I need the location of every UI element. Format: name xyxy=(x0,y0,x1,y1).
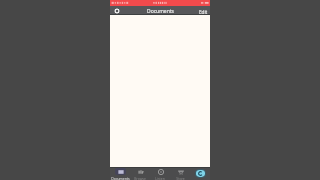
button[interactable]: Listen xyxy=(150,167,170,180)
button[interactable]: Browse xyxy=(130,167,150,180)
button[interactable]: Edit xyxy=(197,7,210,15)
staticText: Store xyxy=(176,176,185,180)
staticText: Documents xyxy=(147,8,174,15)
button[interactable]: Assistant xyxy=(190,167,210,180)
button[interactable]: Store xyxy=(170,167,190,180)
staticText: Listen xyxy=(155,176,165,180)
button[interactable]: Settings xyxy=(113,7,120,14)
staticText: Browse xyxy=(134,176,146,180)
staticText: Documents xyxy=(111,176,130,180)
button[interactable]: Documents xyxy=(110,167,130,180)
staticText: Edit xyxy=(199,9,208,15)
